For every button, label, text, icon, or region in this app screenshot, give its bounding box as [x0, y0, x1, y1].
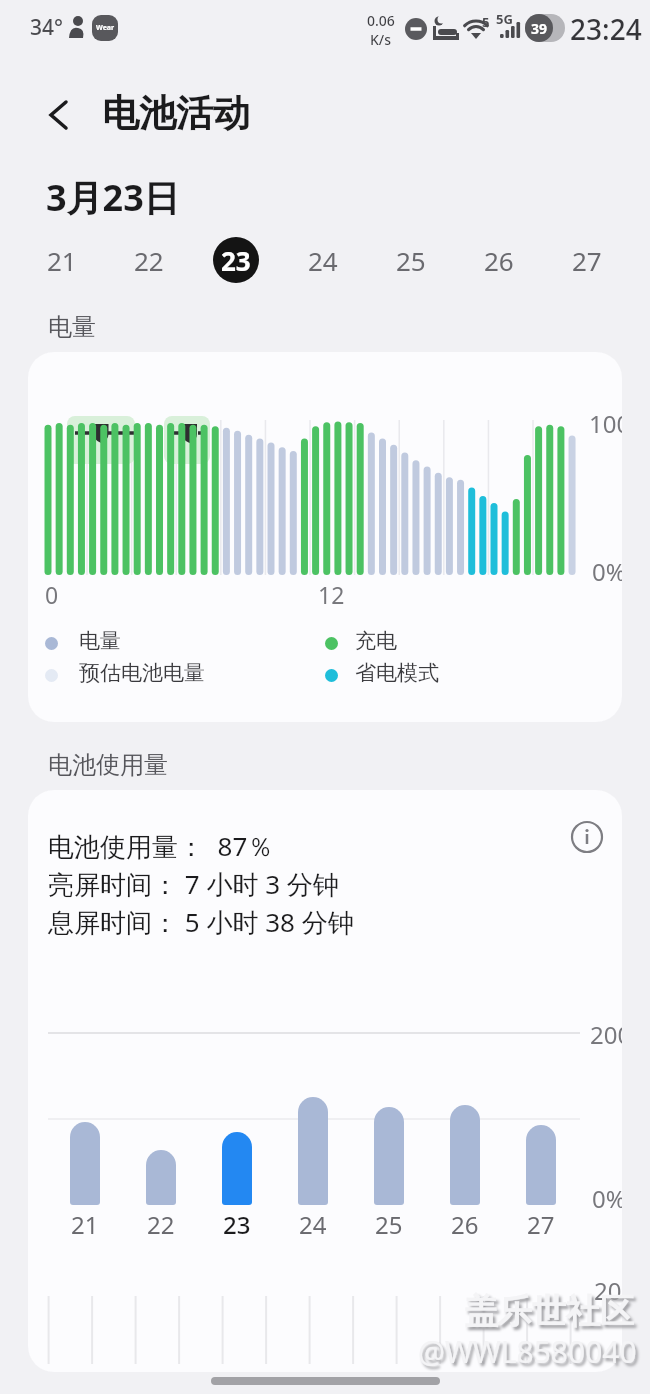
- staticText: 26: [484, 243, 514, 278]
- staticText: 20: [594, 1274, 622, 1307]
- staticText: 12: [318, 579, 345, 610]
- staticText: 0%: [592, 555, 622, 588]
- staticText: 23: [221, 243, 251, 278]
- staticText: 27: [527, 1208, 555, 1238]
- staticText: 电池活动: [102, 90, 250, 137]
- button[interactable]: 22: [105, 232, 192, 288]
- staticText: 22: [134, 243, 164, 278]
- staticText: 亮屏时间： 7 小时 3 分钟: [48, 866, 339, 902]
- staticText: 息屏时间： 5 小时 38 分钟: [48, 904, 354, 940]
- staticText: K/s: [370, 30, 392, 49]
- button[interactable]: [571, 821, 603, 853]
- staticText: 39: [531, 19, 548, 38]
- staticText: 电量: [48, 312, 96, 342]
- staticText: 充电: [355, 628, 397, 654]
- staticText: 34°: [30, 13, 63, 42]
- button[interactable]: 25: [367, 232, 455, 288]
- staticText: 5G: [496, 10, 513, 28]
- staticText: 26: [451, 1208, 479, 1238]
- staticText: 24: [299, 1208, 327, 1238]
- staticText: 25: [375, 1208, 403, 1238]
- staticText: 100: [589, 407, 622, 440]
- staticText: 3月23日: [46, 173, 180, 222]
- button[interactable]: 27: [543, 232, 631, 288]
- staticText: 23:24: [570, 10, 642, 48]
- staticText: 电量: [79, 628, 121, 654]
- button[interactable]: 电池活动: [0, 78, 650, 152]
- button[interactable]: 23: [192, 232, 279, 288]
- staticText: 21: [71, 1208, 99, 1238]
- button[interactable]: 21: [18, 232, 105, 288]
- staticText: Wear: [96, 23, 115, 33]
- staticText: 25: [396, 243, 426, 278]
- staticText: 23: [223, 1208, 251, 1238]
- staticText: 27: [572, 243, 602, 278]
- button[interactable]: 24: [279, 232, 367, 288]
- staticText: 电池使用量： 87％: [48, 828, 274, 864]
- staticText: 电池使用量: [48, 750, 168, 780]
- staticText: 0.06: [367, 11, 395, 30]
- staticText: 0%: [592, 1182, 622, 1215]
- staticText: 200: [590, 1018, 622, 1051]
- staticText: 省电模式: [355, 660, 439, 686]
- staticText: 21: [47, 243, 77, 278]
- staticText: 0: [45, 579, 59, 610]
- staticText: 24: [308, 243, 338, 278]
- button[interactable]: 26: [455, 232, 543, 288]
- staticText: 预估电池电量: [79, 660, 205, 686]
- staticText: @WWL8580040: [418, 1331, 637, 1372]
- staticText: 盖乐世社区: [464, 1290, 634, 1333]
- staticText: 22: [147, 1208, 175, 1238]
- staticText: 5: [482, 13, 490, 31]
